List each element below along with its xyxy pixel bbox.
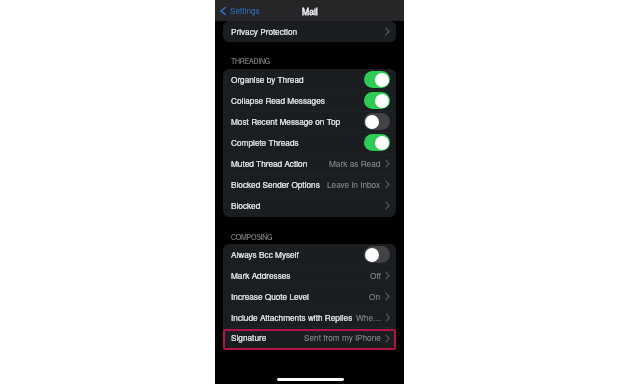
staticText: Privacy Protection [231, 26, 298, 38]
staticText: Settings [230, 5, 260, 17]
button[interactable]: Most Recent Message on Top [223, 111, 396, 132]
staticText: Mark as Read [329, 158, 381, 170]
button[interactable]: Blocked [223, 195, 396, 216]
staticText: Increase Quote Level [231, 291, 309, 303]
button[interactable]: Blocked Sender Options [223, 174, 396, 195]
staticText: Blocked Sender Options [231, 179, 320, 191]
staticText: Always Bcc Myself [231, 249, 299, 261]
staticText: Most Recent Message on Top [231, 116, 341, 128]
staticText: Mail [302, 5, 318, 17]
staticText: Blocked [231, 200, 261, 212]
button[interactable]: On [364, 134, 390, 151]
staticText: Whe… [356, 312, 382, 324]
staticText: Leave in Inbox [327, 179, 381, 191]
button[interactable]: On [364, 92, 390, 109]
staticText: THREADING [231, 56, 270, 66]
button[interactable]: Organise by Thread [223, 69, 396, 90]
button[interactable]: Signature [223, 328, 396, 348]
button[interactable]: Include Attachments with Replies [223, 307, 396, 328]
staticText: Complete Threads [231, 137, 299, 149]
button[interactable]: On [364, 71, 390, 88]
staticText: Include Attachments with Replies [231, 312, 353, 324]
button[interactable]: Complete Threads [223, 132, 396, 153]
staticText: Muted Thread Action [231, 158, 308, 170]
button[interactable]: Off [364, 246, 390, 263]
staticText: Mark Addresses [231, 270, 291, 282]
staticText: Off [370, 270, 381, 282]
button[interactable]: Collapse Read Messages [223, 90, 396, 111]
button[interactable]: Mark Addresses [223, 265, 396, 286]
staticText: Signature [231, 332, 267, 344]
button[interactable]: Muted Thread Action [223, 153, 396, 174]
staticText: Organise by Thread [231, 74, 304, 86]
button[interactable]: Increase Quote Level [223, 286, 396, 307]
staticText: COMPOSING [231, 232, 273, 242]
button[interactable]: Off [364, 113, 390, 130]
staticText: Collapse Read Messages [231, 95, 325, 107]
staticText: On [369, 291, 381, 303]
button[interactable]: Always Bcc Myself [223, 244, 396, 265]
button[interactable]: Privacy Protection [223, 21, 396, 42]
staticText: Sent from my iPhone [304, 332, 381, 344]
button[interactable]: Settings [220, 0, 260, 21]
